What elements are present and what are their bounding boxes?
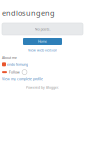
- button[interactable]: View web version: [0, 48, 85, 52]
- staticText: Powered by Blogger.: [26, 85, 59, 90]
- button[interactable]: endo femung: [2, 62, 28, 67]
- staticText: No posts.: [34, 26, 50, 32]
- staticText: Home: [38, 39, 47, 44]
- staticText: View web version: [28, 48, 57, 52]
- button[interactable]: Home: [23, 38, 62, 45]
- button[interactable]: View my complete profile: [2, 77, 43, 81]
- staticText: View my complete profile: [2, 77, 43, 81]
- staticText: endo femung: [7, 62, 28, 67]
- staticText: About me: [2, 55, 17, 60]
- staticText: Follow: [9, 70, 20, 74]
- staticText: endlosungeng: [2, 8, 55, 18]
